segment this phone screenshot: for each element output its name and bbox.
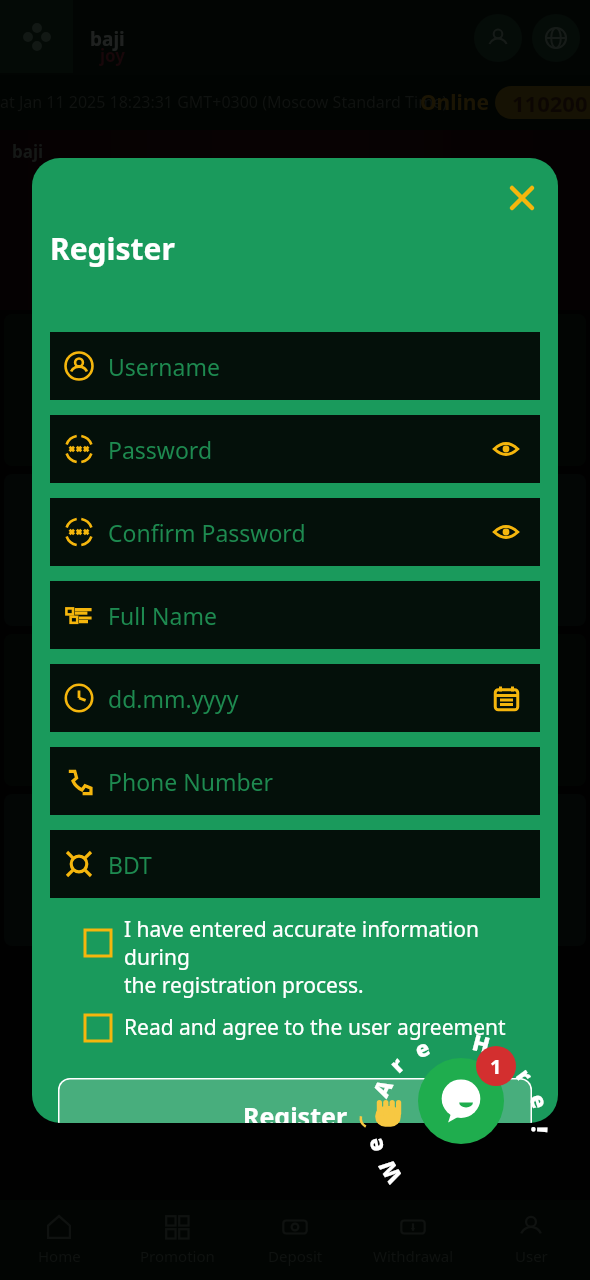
button[interactable] xyxy=(396,474,586,626)
button[interactable]: Password xyxy=(50,415,540,483)
staticText: User xyxy=(515,1246,548,1266)
button[interactable]: Pick date xyxy=(486,678,526,718)
staticText: BDT xyxy=(108,849,152,880)
button[interactable]: Chat support xyxy=(418,1058,504,1144)
button[interactable]: dd.mm.yyyy xyxy=(50,664,540,732)
button[interactable] xyxy=(4,474,194,626)
staticText: I have entered accurate information duri… xyxy=(124,915,540,999)
button[interactable]: Full Name xyxy=(50,581,540,649)
staticText: dd.mm.yyyy xyxy=(108,683,239,714)
staticText: e xyxy=(492,1039,520,1071)
button[interactable] xyxy=(4,314,194,466)
staticText: H xyxy=(469,1026,493,1060)
staticText: Deposit xyxy=(268,1246,323,1266)
button[interactable]: Username xyxy=(50,332,540,400)
button[interactable] xyxy=(396,314,586,466)
staticText: Password xyxy=(108,434,213,465)
staticText: Register xyxy=(243,1099,348,1123)
staticText: e xyxy=(524,1090,556,1112)
button[interactable]: 110200 xyxy=(495,86,590,119)
button[interactable] xyxy=(200,474,390,626)
button[interactable]: Confirm Password xyxy=(50,498,540,566)
staticText: r xyxy=(510,1062,541,1088)
staticText: W xyxy=(371,1154,408,1190)
staticText: A xyxy=(365,1074,399,1102)
staticText: Home xyxy=(38,1246,81,1266)
staticText: joy xyxy=(100,44,126,67)
button[interactable] xyxy=(200,794,390,946)
staticText: 110200 xyxy=(512,88,588,118)
button[interactable]: Menu xyxy=(0,0,73,73)
staticText xyxy=(443,1025,451,1055)
staticText: Online xyxy=(420,88,489,117)
button[interactable]: Phone Number xyxy=(50,747,540,815)
staticText: Confirm Password xyxy=(108,517,306,548)
staticText: 1 xyxy=(490,1053,502,1080)
button[interactable]: Language xyxy=(532,14,580,62)
staticText xyxy=(354,1111,384,1121)
button[interactable]: BDT xyxy=(50,830,540,898)
button[interactable] xyxy=(4,794,194,946)
staticText: Withdrawal xyxy=(373,1246,454,1266)
button[interactable]: Show password xyxy=(486,512,526,552)
button[interactable]: I have entered accurate information duri… xyxy=(50,915,540,999)
staticText: e xyxy=(409,1031,435,1064)
staticText: Read and agree to the user agreement xyxy=(124,1013,506,1042)
button[interactable] xyxy=(4,634,194,786)
button[interactable]: Show password xyxy=(486,429,526,469)
staticText: Promotion xyxy=(140,1246,215,1266)
staticText: baji xyxy=(12,140,44,163)
button[interactable] xyxy=(396,794,586,946)
staticText: Register xyxy=(50,228,175,269)
staticText: r xyxy=(382,1049,411,1079)
staticText: Full Name xyxy=(108,600,217,631)
button[interactable]: Register xyxy=(58,1078,532,1123)
button[interactable]: Close xyxy=(500,176,544,220)
button[interactable] xyxy=(200,634,390,786)
button[interactable] xyxy=(396,634,586,786)
button[interactable]: Account xyxy=(474,14,522,62)
button[interactable] xyxy=(200,314,390,466)
staticText: baji xyxy=(90,26,125,52)
staticText: ! xyxy=(525,1126,556,1134)
staticText: Username xyxy=(108,351,220,382)
staticText: e xyxy=(358,1135,390,1155)
staticText: at Jan 11 2025 18:23:31 GMT+0300 (Moscow… xyxy=(0,91,447,113)
staticText: Phone Number xyxy=(108,766,274,797)
button[interactable]: Read and agree to the user agreement xyxy=(50,1013,550,1042)
